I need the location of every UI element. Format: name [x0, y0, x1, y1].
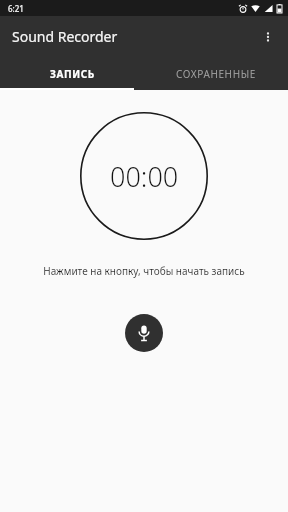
- button[interactable]: ЗАПИСЬ: [0, 57, 144, 90]
- staticText: Нажмите на кнопку, чтобы начать запись: [0, 264, 288, 278]
- button[interactable]: Start recording: [125, 314, 163, 352]
- button[interactable]: More options: [248, 17, 288, 57]
- staticText: СОХРАНЕННЫЕ: [176, 67, 256, 81]
- staticText: 6:21: [8, 3, 24, 14]
- staticText: Sound Recorder: [12, 27, 118, 46]
- staticText: 00:00: [110, 158, 179, 195]
- button[interactable]: СОХРАНЕННЫЕ: [144, 57, 288, 90]
- staticText: ЗАПИСЬ: [50, 67, 95, 81]
